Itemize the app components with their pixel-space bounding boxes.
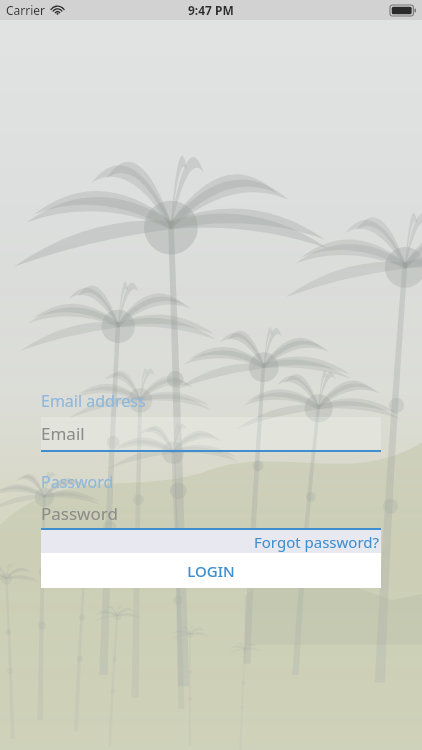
staticText: Carrier (6, 2, 46, 18)
staticText: 9:47 PM (188, 2, 234, 18)
button[interactable]: Password (41, 498, 381, 528)
button[interactable]: LOGIN (41, 553, 381, 588)
staticText: LOGIN (187, 561, 235, 581)
staticText: Email (41, 422, 85, 445)
staticText: Forgot password? (254, 532, 380, 552)
staticText: Password (41, 502, 118, 525)
button[interactable]: Forgot password? (41, 530, 381, 553)
staticText: Password (41, 471, 114, 493)
button[interactable]: Email (41, 417, 381, 450)
staticText: Email address (41, 390, 146, 412)
